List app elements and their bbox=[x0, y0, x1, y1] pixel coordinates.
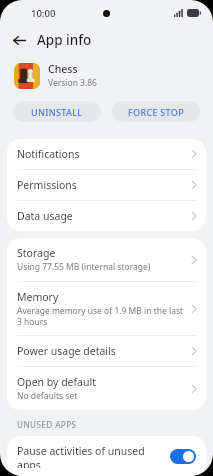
staticText: Permissions bbox=[17, 178, 77, 192]
staticText: App info bbox=[37, 31, 92, 49]
staticText: Average memory use of 1.9 MB in the last… bbox=[17, 305, 186, 327]
button[interactable]: Pause activities of unused apps bbox=[7, 436, 206, 476]
staticText: Open by default bbox=[17, 375, 97, 389]
button[interactable]: Open by default bbox=[7, 367, 206, 410]
button[interactable]: Back bbox=[8, 29, 30, 51]
staticText: Power usage details bbox=[17, 344, 116, 358]
staticText: 10:00 bbox=[31, 7, 56, 20]
button[interactable]: Notifications bbox=[7, 139, 206, 169]
button[interactable]: Memory bbox=[7, 282, 206, 335]
staticText: No defaults set bbox=[17, 390, 78, 402]
button[interactable]: Data usage bbox=[7, 201, 206, 231]
staticText: Notifications bbox=[17, 147, 80, 161]
button[interactable]: UNINSTALL bbox=[13, 101, 101, 122]
button[interactable]: FORCE STOP bbox=[112, 101, 200, 122]
button[interactable]: Storage bbox=[7, 238, 206, 281]
staticText: UNINSTALL bbox=[31, 106, 83, 118]
staticText: Storage bbox=[17, 246, 56, 260]
staticText: Pause activities of unused apps bbox=[17, 444, 164, 468]
staticText: FORCE STOP bbox=[128, 106, 184, 118]
staticText: UNUSED APPS bbox=[17, 419, 77, 430]
staticText: Memory bbox=[17, 290, 59, 304]
staticText: Data usage bbox=[17, 209, 73, 223]
staticText: Version 3.86 bbox=[48, 77, 97, 89]
button[interactable]: Power usage details bbox=[7, 336, 206, 366]
staticText: Chess bbox=[48, 62, 78, 76]
staticText: Using 77.55 MB (internal storage) bbox=[17, 261, 151, 273]
button[interactable]: Permissions bbox=[7, 170, 206, 200]
